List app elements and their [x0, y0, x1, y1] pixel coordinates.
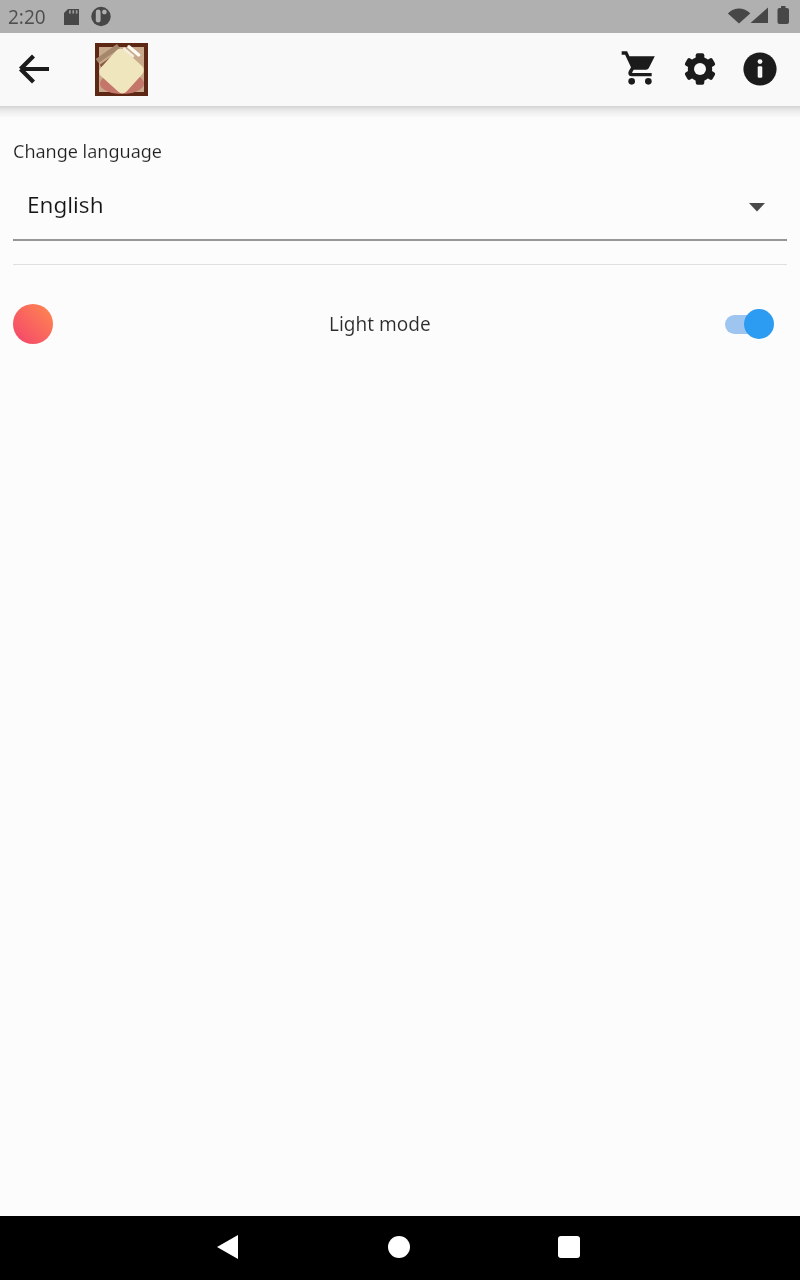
button[interactable]: English [0, 184, 800, 242]
button[interactable] [676, 45, 724, 93]
button[interactable] [736, 45, 784, 93]
staticText: Light mode [329, 311, 431, 337]
staticText: English [27, 189, 104, 220]
button[interactable] [719, 303, 779, 343]
button[interactable] [11, 45, 59, 93]
button[interactable] [266, 1216, 533, 1280]
button[interactable] [533, 1216, 800, 1280]
staticText: Change language [13, 139, 163, 164]
button[interactable] [13, 304, 53, 344]
staticText: 2:20 [8, 4, 46, 30]
button[interactable] [0, 1216, 266, 1280]
button[interactable] [616, 44, 664, 92]
